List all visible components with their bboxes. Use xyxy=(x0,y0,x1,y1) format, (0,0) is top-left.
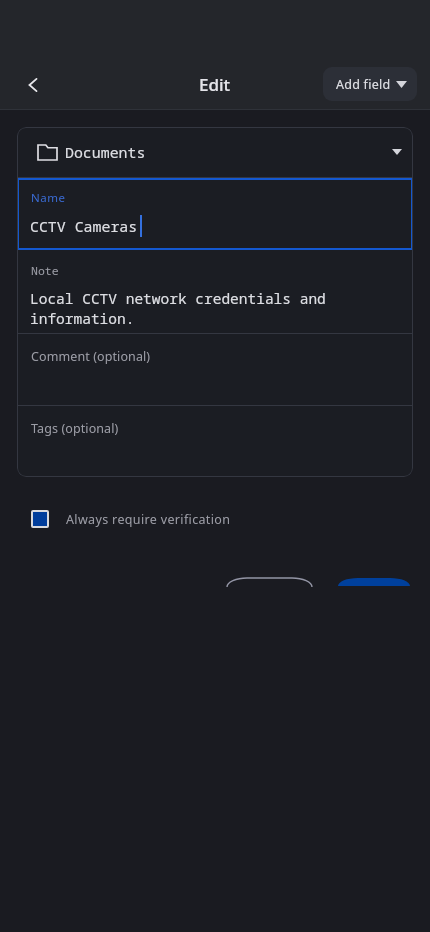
button[interactable]: Add field xyxy=(323,67,417,101)
staticText: Tags (optional) xyxy=(31,420,119,437)
staticText: Edit xyxy=(199,73,231,96)
staticText: CCTV Cameras xyxy=(30,216,138,236)
button[interactable]: Comment (optional) xyxy=(17,334,413,405)
button[interactable]: Cancel xyxy=(227,578,312,589)
staticText: Name xyxy=(31,190,66,206)
staticText: Local CCTV network credentials and infor… xyxy=(30,288,360,328)
button[interactable]: Name xyxy=(17,178,413,250)
button[interactable]: Documents xyxy=(17,127,413,177)
button[interactable]: Save xyxy=(338,578,410,586)
button[interactable]: Tags (optional) xyxy=(17,406,413,477)
staticText: Note xyxy=(31,263,59,279)
staticText: Add field xyxy=(336,76,391,93)
staticText: Comment (optional) xyxy=(31,348,151,365)
button[interactable]: Back xyxy=(9,61,57,109)
staticText: Always require verification xyxy=(66,511,231,528)
staticText: Documents xyxy=(65,142,146,162)
button[interactable]: Always require verification xyxy=(17,498,231,540)
button[interactable]: Note xyxy=(17,250,413,333)
